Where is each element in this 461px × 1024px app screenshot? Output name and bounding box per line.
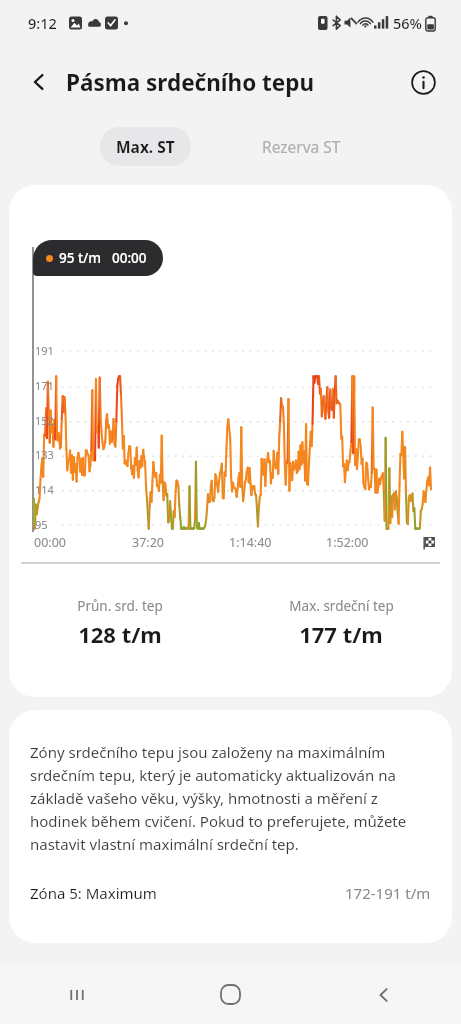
staticText: 172-191 t/m	[345, 883, 431, 903]
staticText: 1:14:40	[229, 534, 272, 551]
staticText: 191	[35, 343, 54, 358]
staticText: Zóna 5: Maximum	[30, 883, 157, 903]
staticText: 00:00	[34, 534, 66, 551]
button[interactable]: Home	[153, 965, 307, 1024]
button[interactable]: Průn. srd. tep	[9, 597, 230, 649]
button[interactable]: Information	[402, 61, 444, 103]
staticText: Rezerva ST	[262, 136, 341, 157]
staticText: Průn. srd. tep	[77, 597, 163, 615]
staticText: Max. srdeční tep	[289, 597, 394, 615]
staticText: 171	[35, 378, 54, 393]
staticText: 95 t/m	[59, 249, 102, 267]
button[interactable]: Recent apps	[0, 965, 153, 1024]
staticText: 00:00	[112, 249, 147, 267]
staticText: 56%	[393, 13, 422, 33]
staticText: 95	[35, 517, 48, 532]
staticText: Max. ST	[116, 136, 175, 157]
staticText: Zóny srdečního tepu jsou založeny na max…	[30, 742, 431, 855]
staticText: 177 t/m	[299, 619, 383, 649]
staticText: 133	[35, 447, 54, 462]
button[interactable]: Rezerva ST	[246, 127, 357, 166]
staticText: 1:52:00	[326, 534, 369, 551]
button[interactable]: Max. srdeční tep	[230, 597, 452, 649]
staticText: 37:20	[132, 534, 164, 551]
staticText: 152	[35, 413, 54, 428]
staticText: 9:12	[28, 13, 57, 33]
staticText: 114	[35, 482, 54, 497]
button[interactable]: Back	[19, 62, 59, 102]
button[interactable]: Max. ST	[100, 127, 191, 166]
button[interactable]: Back	[307, 965, 461, 1024]
button[interactable]: Zóna 5: Maximum	[9, 883, 452, 903]
staticText: Pásma srdečního tepu	[66, 67, 315, 98]
staticText: 128 t/m	[78, 619, 162, 649]
